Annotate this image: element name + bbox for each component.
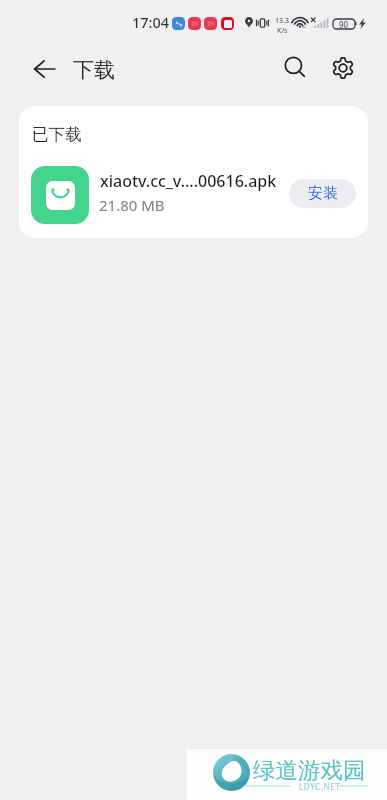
button[interactable]: Search <box>275 47 316 88</box>
staticText: 21.80 MB <box>99 195 165 215</box>
staticText: K/s <box>277 26 288 36</box>
staticText: 下载 <box>73 57 115 83</box>
button[interactable]: Back <box>25 49 64 88</box>
button[interactable]: xiaotv.cc_v....00616.apk <box>19 161 368 224</box>
button[interactable]: 安装 <box>289 179 356 208</box>
staticText: 绿道游戏园 <box>253 756 366 784</box>
staticText: 已下载 <box>32 124 82 145</box>
staticText: LDYC.NET <box>299 781 341 792</box>
staticText: xiaotv.cc_v....00616.apk <box>100 170 277 192</box>
button[interactable]: Settings <box>322 47 363 88</box>
staticText: 安装 <box>308 184 338 203</box>
staticText: 90 <box>339 19 349 29</box>
staticText: 17:04 <box>132 12 170 32</box>
staticText: 13.3 <box>275 16 289 26</box>
